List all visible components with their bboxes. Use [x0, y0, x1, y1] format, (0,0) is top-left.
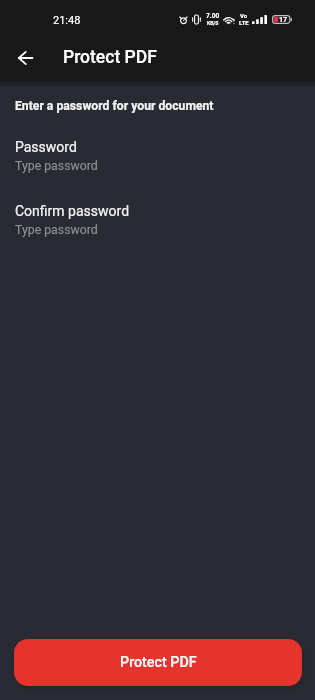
- staticText: 7.00: [206, 12, 220, 20]
- staticText: Type password: [15, 159, 98, 173]
- staticText: Enter a password for your document: [15, 99, 214, 113]
- staticText: 17: [279, 16, 288, 24]
- staticText: Confirm password: [15, 203, 130, 219]
- staticText: Type password: [15, 223, 98, 237]
- staticText: Protect PDF: [120, 654, 197, 671]
- staticText: Protect PDF: [63, 47, 157, 68]
- staticText: Vo: [240, 12, 248, 19]
- staticText: Password: [15, 139, 77, 155]
- staticText: 21:48: [53, 14, 81, 27]
- staticText: KB/S: [207, 20, 219, 26]
- button[interactable]: Back: [1, 34, 49, 82]
- button[interactable]: Protect PDF: [14, 639, 302, 686]
- staticText: LTE: [239, 19, 249, 26]
